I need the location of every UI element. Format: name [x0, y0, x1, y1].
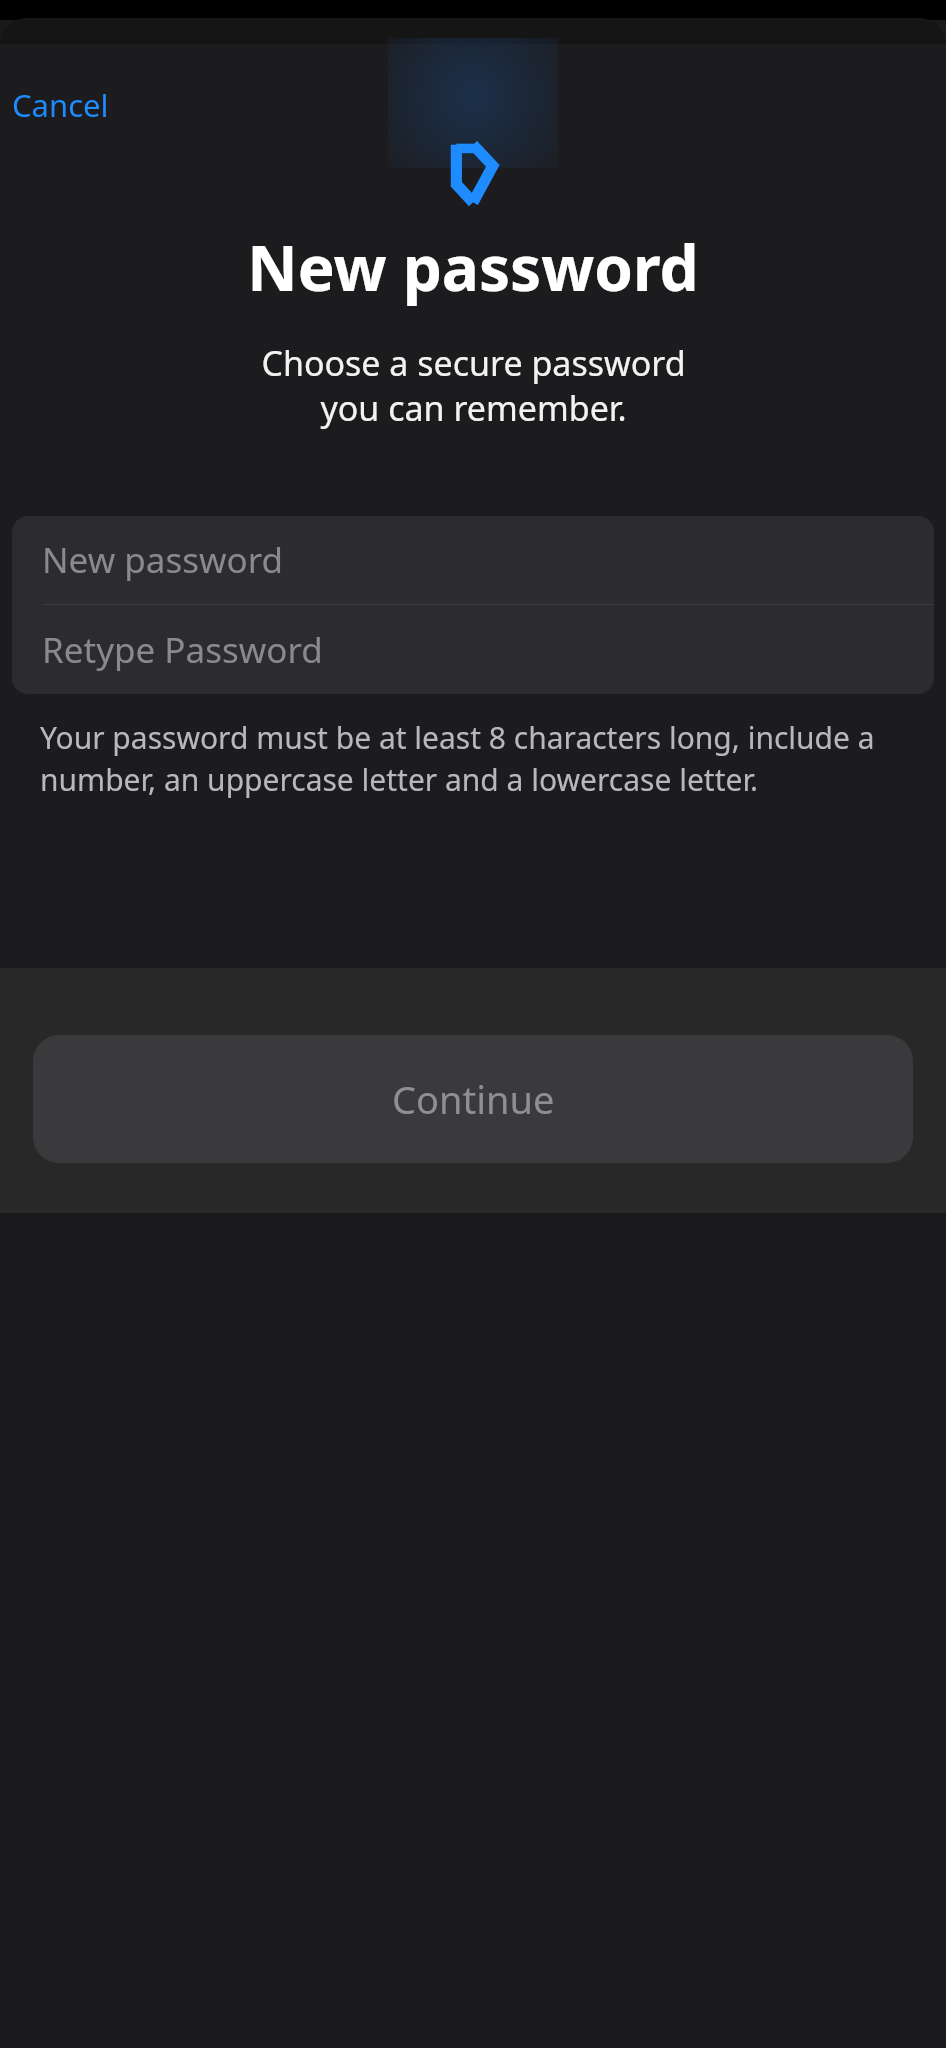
staticText: Choose a secure password you can remembe…	[261, 340, 686, 431]
other: App logo	[447, 141, 499, 203]
button[interactable]: Continue	[33, 1035, 913, 1163]
staticText: Your password must be at least 8 charact…	[40, 717, 906, 800]
button[interactable]: Retype Password	[12, 605, 934, 694]
staticText: New password	[42, 536, 283, 584]
staticText: Cancel	[12, 84, 109, 126]
staticText: Retype Password	[42, 626, 323, 674]
staticText: New password	[247, 225, 699, 309]
button[interactable]: New password	[12, 516, 934, 604]
button[interactable]: Cancel	[0, 76, 121, 134]
staticText: Continue	[392, 1073, 555, 1125]
